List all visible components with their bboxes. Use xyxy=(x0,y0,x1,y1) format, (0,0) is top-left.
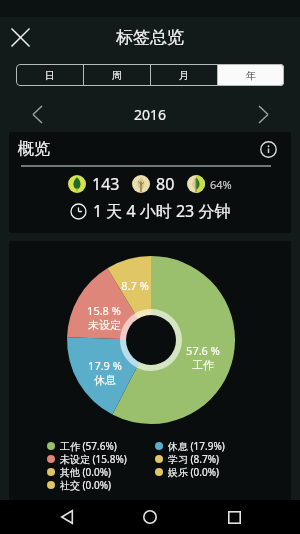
button[interactable]: Home xyxy=(133,500,167,534)
button[interactable]: 休息 (17.9%) xyxy=(155,439,287,452)
staticText: 1 天 4 小时 23 分钟 xyxy=(93,200,231,222)
button[interactable]: 学习 (8.7%) xyxy=(155,452,287,465)
staticText: 休息 (17.9%) xyxy=(168,439,225,452)
button[interactable]: 年 xyxy=(218,64,284,86)
staticText: 工作 xyxy=(192,358,214,372)
button[interactable]: Recent apps xyxy=(217,500,251,534)
button[interactable]: 其他 (0.0%) xyxy=(47,465,155,478)
staticText: 月 xyxy=(179,69,189,82)
staticText: 学习 (8.7%) xyxy=(168,452,220,465)
staticText: 64% xyxy=(210,177,232,192)
staticText: 57.6 % xyxy=(186,343,220,358)
button[interactable]: 周 xyxy=(84,64,150,86)
button[interactable]: 日 xyxy=(16,64,83,86)
staticText: 17.9 % xyxy=(88,358,122,373)
button[interactable]: 工作 (57.6%) xyxy=(47,439,155,452)
staticText: 娱乐 (0.0%) xyxy=(168,465,220,478)
button[interactable]: 月 xyxy=(151,64,217,86)
staticText: 80 xyxy=(156,173,175,195)
staticText: 2016 xyxy=(134,105,167,123)
staticText: 周 xyxy=(112,69,122,82)
staticText: 8.7 % xyxy=(121,278,149,293)
button[interactable]: Info xyxy=(258,139,278,159)
staticText: 概览 xyxy=(18,139,50,159)
staticText: 未设定 (15.8%) xyxy=(60,452,127,465)
button[interactable]: Close xyxy=(4,21,36,53)
button[interactable]: Next year xyxy=(252,105,274,123)
button[interactable]: Back xyxy=(50,500,84,534)
staticText: 15.8 % xyxy=(87,303,121,318)
staticText: 工作 (57.6%) xyxy=(60,439,117,452)
staticText: 143 xyxy=(92,173,120,195)
staticText: 社交 (0.0%) xyxy=(60,478,112,491)
staticText: 其他 (0.0%) xyxy=(60,465,112,478)
staticText: 未设定 xyxy=(88,318,121,332)
button[interactable]: 社交 (0.0%) xyxy=(47,478,155,491)
button[interactable]: Previous year xyxy=(26,105,48,123)
staticText: 年 xyxy=(246,69,256,82)
button[interactable]: 娱乐 (0.0%) xyxy=(155,465,287,478)
staticText: 日 xyxy=(45,69,55,82)
staticText: 休息 xyxy=(94,373,116,387)
button[interactable]: 未设定 (15.8%) xyxy=(47,452,155,465)
staticText: 标签总览 xyxy=(116,27,184,48)
